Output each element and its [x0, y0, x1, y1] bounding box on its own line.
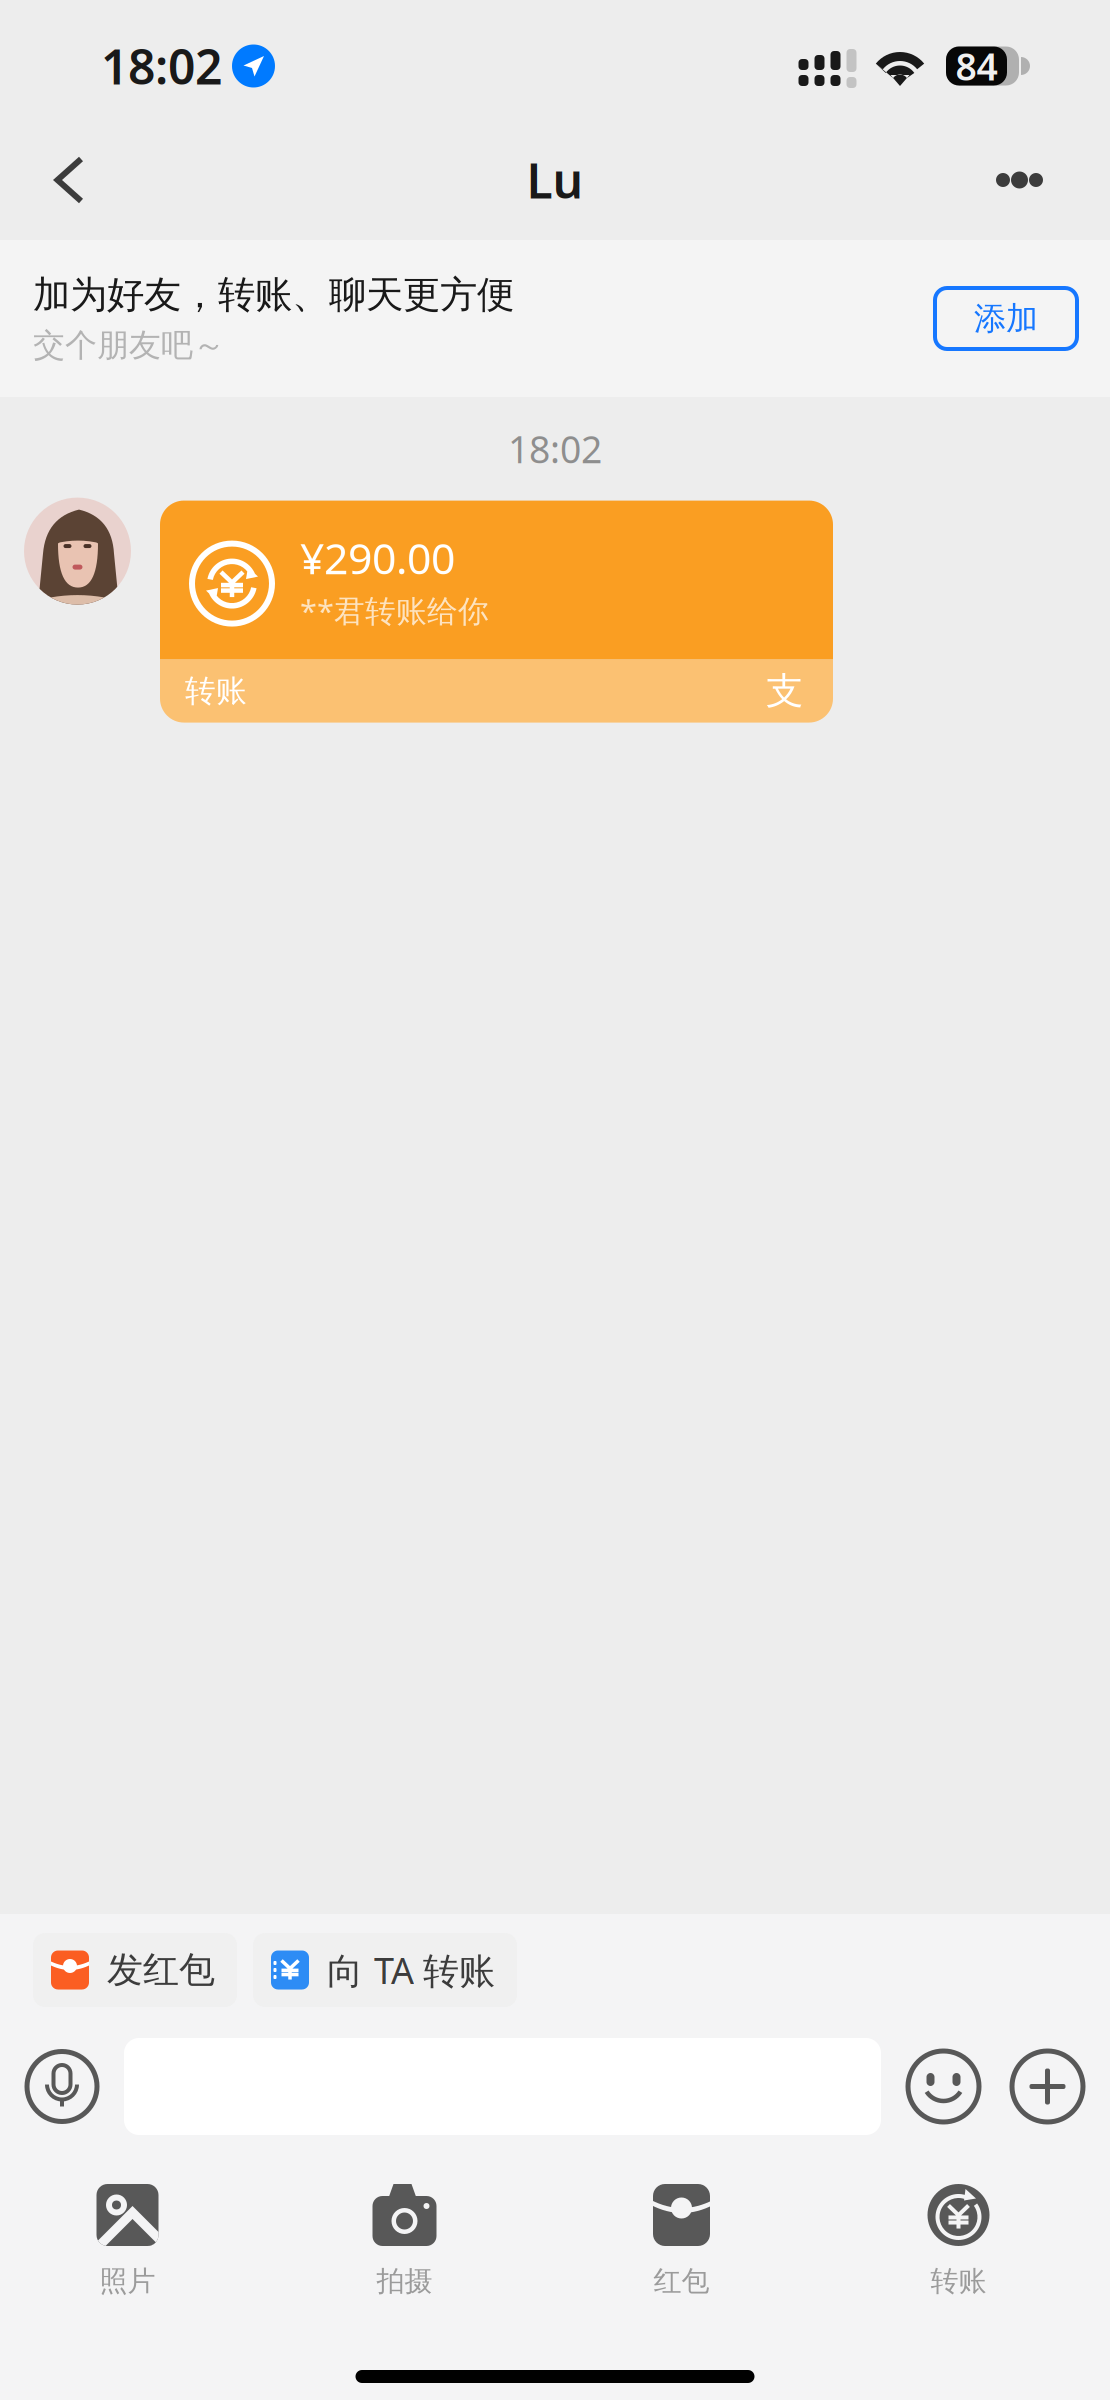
- staticText: 支: [766, 668, 803, 714]
- staticText: 照片: [99, 2264, 155, 2298]
- button[interactable]: More: [950, 130, 1110, 242]
- staticText: 拍摄: [376, 2264, 432, 2298]
- staticText: 加为好友，转账、聊天更方便: [33, 272, 514, 318]
- button[interactable]: ¥290.00: [160, 501, 833, 723]
- staticText: 添加: [974, 299, 1038, 338]
- staticText: 转账: [930, 2264, 986, 2298]
- staticText: **君转账给你: [300, 590, 489, 631]
- button[interactable]: 转账: [820, 2184, 1097, 2298]
- button[interactable]: Back: [0, 132, 130, 240]
- button[interactable]: 拍摄: [266, 2184, 543, 2298]
- button[interactable]: 向 TA 转账: [253, 1933, 517, 2007]
- staticText: 交个朋友吧～: [33, 326, 225, 365]
- button[interactable]: Emoji: [881, 2051, 979, 2122]
- staticText: 发红包: [107, 1948, 215, 1992]
- staticText: ¥290.00: [300, 529, 455, 586]
- staticText: 向 TA 转账: [327, 1946, 495, 1994]
- staticText: 84: [955, 41, 997, 91]
- button[interactable]: 发红包: [33, 1933, 237, 2007]
- button[interactable]: 红包: [543, 2184, 820, 2298]
- staticText: 红包: [653, 2264, 709, 2298]
- staticText: 18:02: [101, 34, 222, 98]
- staticText: 18:02: [508, 424, 602, 474]
- staticText: Lu: [526, 148, 583, 212]
- button[interactable]: 照片: [0, 2184, 266, 2298]
- button[interactable]: More options: [979, 2051, 1110, 2122]
- button[interactable]: 添加: [935, 288, 1077, 349]
- staticText: 转账: [185, 672, 247, 710]
- button[interactable]: Voice message: [0, 2051, 124, 2121]
